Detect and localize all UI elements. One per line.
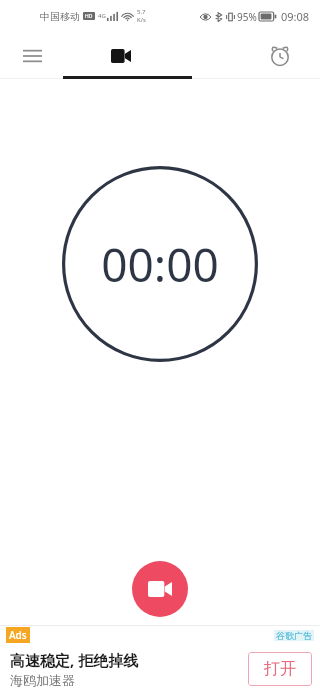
button[interactable]: Recorder tab — [65, 32, 240, 79]
button[interactable]: Menu — [0, 32, 65, 79]
staticText: 谷歌广告 — [276, 630, 312, 641]
button[interactable]: 打开 — [248, 652, 312, 686]
staticText: 5.7 — [137, 8, 146, 16]
staticText: K/s — [137, 16, 146, 24]
staticText: 00:00 — [101, 233, 219, 296]
staticText: Ads — [9, 628, 27, 642]
staticText: 海鸥加速器 — [10, 672, 75, 688]
button[interactable]: Alarm tab — [240, 32, 320, 79]
staticText: 95% — [237, 10, 257, 24]
staticText: 高速稳定, 拒绝掉线 — [10, 650, 139, 670]
staticText: HD — [85, 13, 93, 20]
staticText: 4G — [98, 12, 106, 20]
button[interactable]: Start recording — [132, 561, 188, 617]
staticText: 中国移动 — [40, 10, 80, 23]
staticText: 09:08 — [281, 9, 310, 24]
staticText: 打开 — [264, 659, 296, 679]
